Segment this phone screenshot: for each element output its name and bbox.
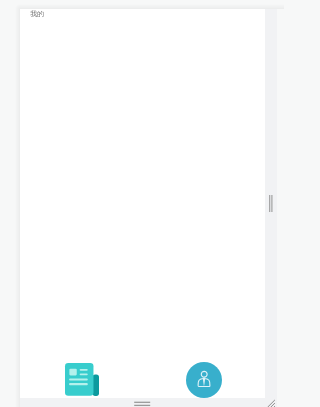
button[interactable]: Profile xyxy=(186,362,222,398)
button[interactable]: News xyxy=(65,363,99,396)
staticText: 我的 xyxy=(30,9,44,18)
